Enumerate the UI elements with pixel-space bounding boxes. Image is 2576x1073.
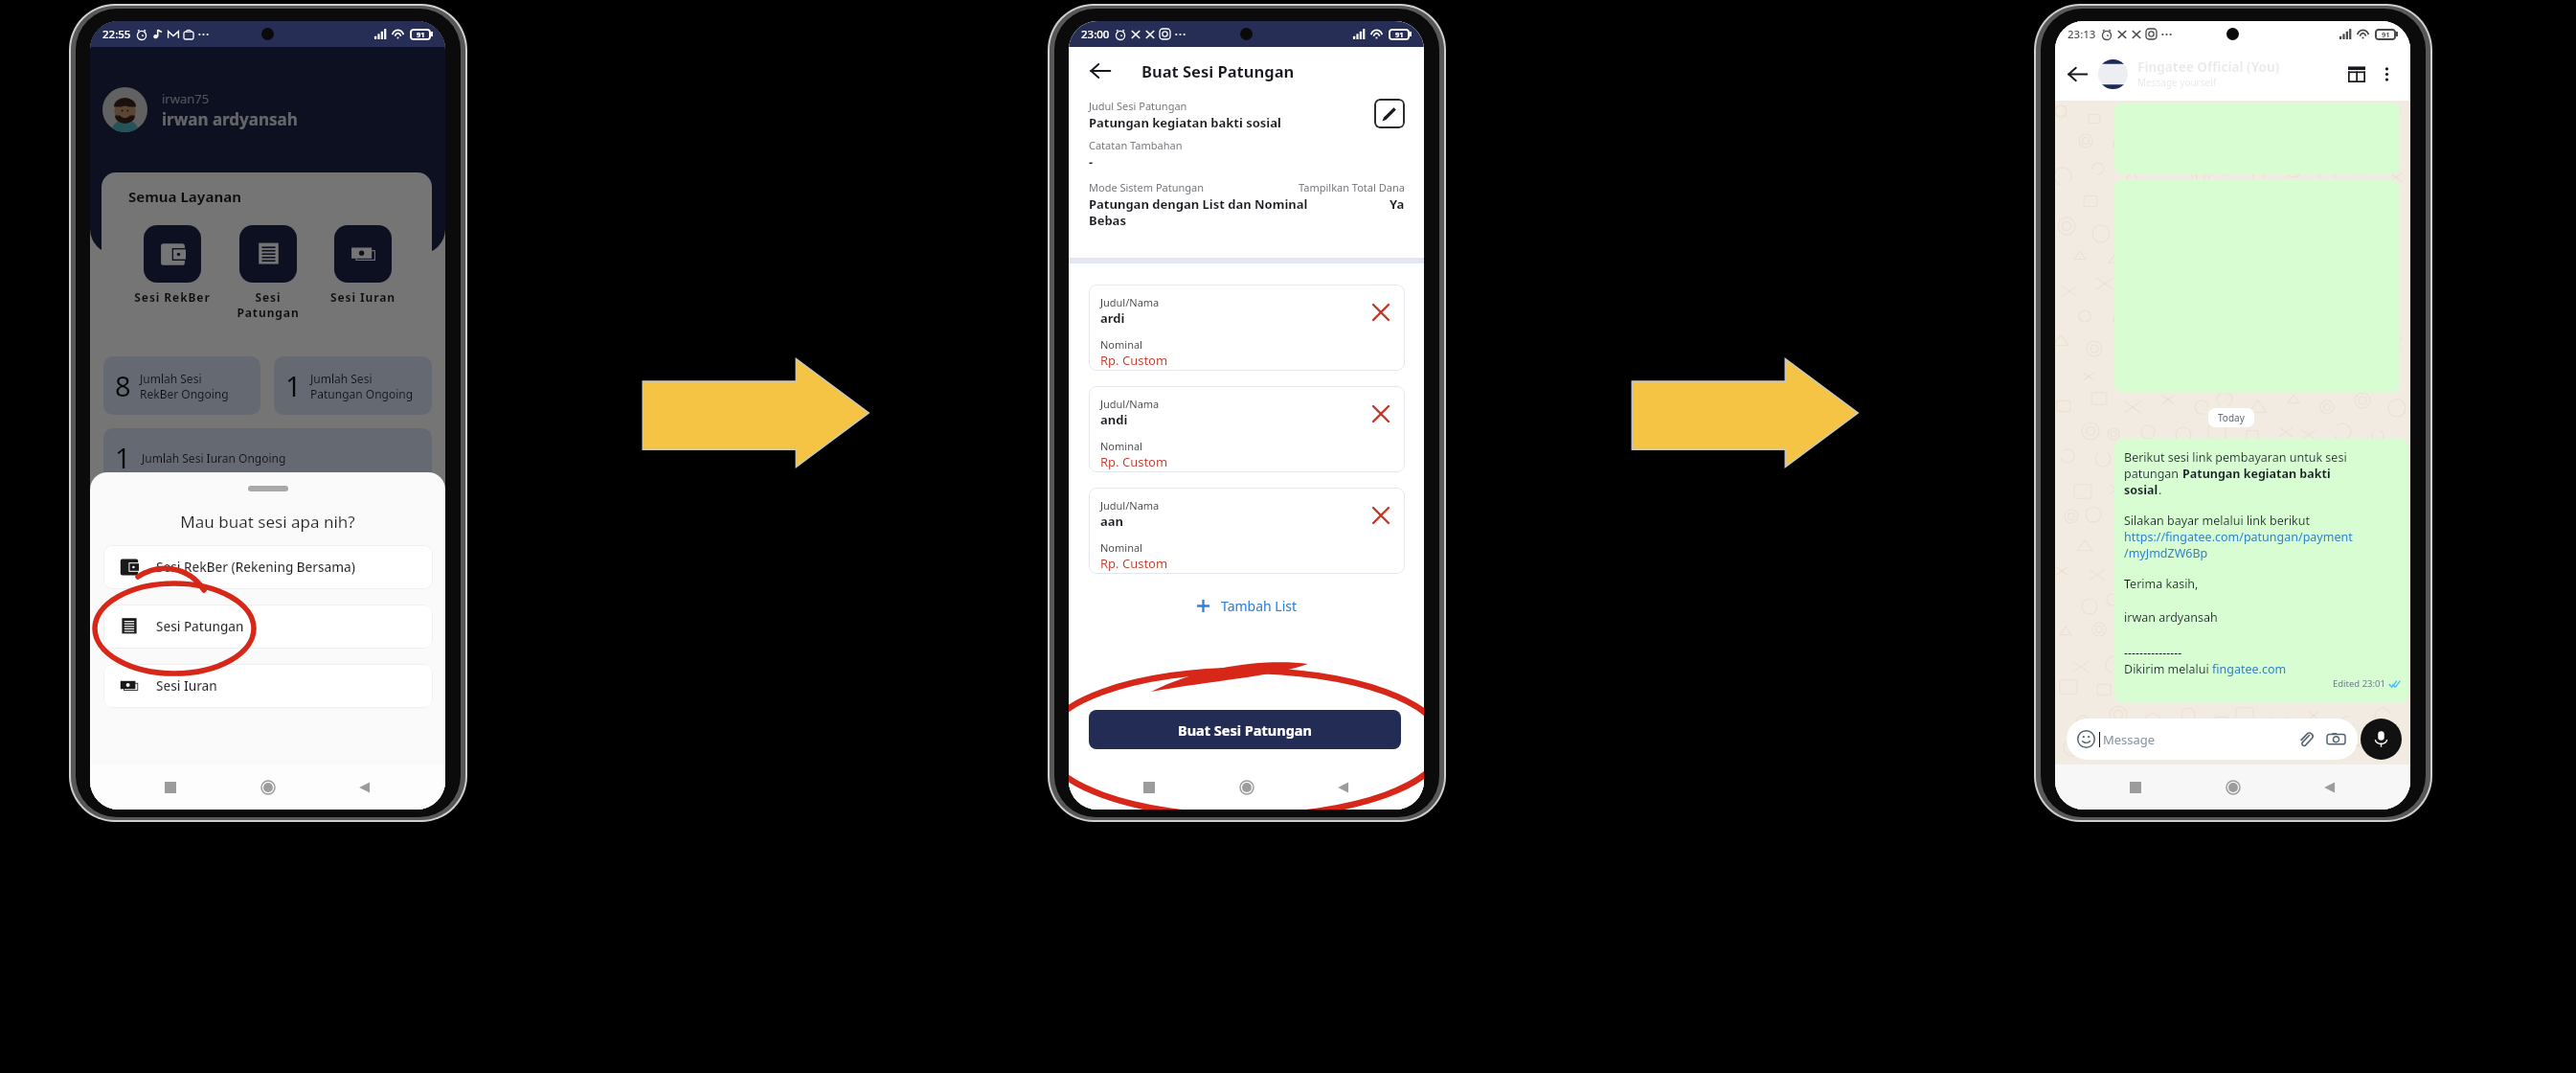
- button[interactable]: Back: [1327, 771, 1360, 804]
- button[interactable]: 8: [103, 356, 260, 415]
- button[interactable]: Home: [1231, 771, 1263, 804]
- button[interactable]: Back: [2314, 771, 2346, 804]
- staticText: patungan: [2124, 466, 2182, 482]
- button[interactable]: Sesi RekBer: [128, 225, 216, 305]
- button[interactable]: Message: [2067, 719, 2358, 760]
- staticText: Catatan Tambahan: [1089, 138, 1183, 152]
- button[interactable]: Judul/Nama: [1089, 386, 1405, 472]
- staticText: Judul/Nama: [1100, 498, 1160, 513]
- staticText: aan: [1100, 513, 1124, 530]
- staticText: Nominal: [1100, 540, 1142, 555]
- staticText: /myJmdZW6Bp: [2124, 545, 2208, 561]
- staticText: Jumlah Sesi Iuran Ongoing: [142, 450, 286, 466]
- staticText: Edited 23:01: [2333, 677, 2385, 690]
- button[interactable]: Business profile: [2344, 61, 2369, 86]
- staticText: Ya: [1390, 195, 1405, 213]
- staticText: Sesi Patungan: [156, 618, 244, 635]
- staticText: Tampilkan Total Dana: [1299, 180, 1405, 194]
- staticText: -: [1089, 153, 1094, 171]
- button[interactable]: 1: [274, 356, 432, 415]
- staticText: Jumlah Sesi Patungan Ongoing: [310, 371, 414, 401]
- staticText: 8: [115, 367, 131, 404]
- button[interactable]: Remove item: [1368, 503, 1393, 528]
- staticText: Rp. Custom: [1100, 555, 1168, 572]
- staticText: irwan ardyansah: [2124, 609, 2218, 626]
- staticText: Sesi Iuran: [156, 677, 217, 695]
- staticText: ---------------: [2124, 645, 2182, 661]
- staticText: 22:55: [102, 27, 131, 42]
- button[interactable]: More options: [2374, 61, 2399, 86]
- button[interactable]: Home: [252, 771, 284, 804]
- staticText: ardi: [1100, 309, 1125, 327]
- staticText: irwan75: [162, 90, 210, 107]
- button[interactable]: Edit: [1374, 99, 1405, 128]
- staticText: 1: [115, 439, 131, 476]
- staticText: Berikut sesi link pembayaran untuk sesi: [2124, 449, 2347, 466]
- staticText: sosial: [2124, 482, 2158, 498]
- button[interactable]: Remove item: [1368, 401, 1393, 426]
- staticText: Mode Sistem Patungan: [1089, 180, 1205, 194]
- staticText: Today: [2218, 411, 2245, 424]
- staticText: Fingatee Official (You): [2137, 58, 2280, 76]
- button[interactable]: Sesi Iuran: [103, 664, 433, 708]
- button[interactable]: Back: [2065, 61, 2090, 86]
- staticText: Buat Sesi Patungan: [1178, 720, 1312, 740]
- staticText: Nominal: [1100, 439, 1142, 453]
- staticText: Patungan dengan List dan Nominal Bebas: [1089, 195, 1322, 229]
- staticText: andi: [1100, 411, 1128, 428]
- button[interactable]: Sesi RekBer (Rekening Bersama): [103, 545, 433, 589]
- staticText: Mau buat sesi apa nih?: [90, 511, 445, 533]
- staticText: Patungan kegiatan bakti: [2182, 466, 2331, 482]
- staticText: Rp. Custom: [1100, 453, 1168, 470]
- button[interactable]: Remove item: [1368, 300, 1393, 325]
- staticText: 91: [1395, 30, 1404, 39]
- staticText: Buat Sesi Patungan: [1141, 60, 1295, 81]
- staticText: 23:13: [2068, 27, 2096, 42]
- button[interactable]: Judul/Nama: [1089, 488, 1405, 574]
- staticText: https://fingatee.com/patungan/payment: [2124, 529, 2353, 545]
- staticText: Sesi Patungan: [224, 289, 312, 321]
- staticText: 1: [285, 367, 302, 404]
- staticText: Judul/Nama: [1100, 397, 1160, 411]
- staticText: Judul/Nama: [1100, 295, 1160, 309]
- button[interactable]: Back: [1087, 57, 1114, 84]
- staticText: .: [2158, 482, 2162, 498]
- staticText: Nominal: [1100, 337, 1142, 352]
- staticText: Judul Sesi Patungan: [1089, 99, 1187, 113]
- staticText: Patungan kegiatan bakti sosial: [1089, 114, 1281, 131]
- button[interactable]: 1: [103, 428, 432, 487]
- staticText: Message yourself: [2137, 76, 2217, 89]
- staticText: 23:00: [1081, 27, 1110, 42]
- staticText: Rp. Custom: [1100, 352, 1168, 369]
- staticText: irwan ardyansah: [162, 108, 298, 130]
- staticText: Sesi RekBer: [128, 289, 216, 305]
- button[interactable]: Buat Sesi Patungan: [1089, 710, 1401, 749]
- staticText: Dikirim melalui: [2124, 661, 2212, 677]
- button[interactable]: Voice message: [2361, 719, 2402, 760]
- staticText: fingatee.com: [2212, 661, 2287, 677]
- staticText: Semua Layanan: [128, 187, 241, 206]
- button[interactable]: Sesi Patungan: [224, 225, 312, 321]
- button[interactable]: Home: [2217, 771, 2249, 804]
- staticText: Sesi Iuran: [319, 289, 407, 305]
- button[interactable]: Recent apps: [1133, 771, 1165, 804]
- staticText: Sesi RekBer (Rekening Bersama): [156, 559, 356, 576]
- button[interactable]: Recent apps: [2119, 771, 2152, 804]
- button[interactable]: Recent apps: [154, 771, 187, 804]
- button[interactable]: Back: [349, 771, 381, 804]
- staticText: Message: [2103, 731, 2156, 748]
- button[interactable]: Judul/Nama: [1089, 285, 1405, 371]
- staticText: Terima kasih,: [2124, 576, 2199, 592]
- staticText: Tambah List: [1221, 597, 1298, 615]
- staticText: 91: [2382, 30, 2390, 39]
- button[interactable]: Sesi Patungan: [103, 605, 433, 649]
- staticText: Jumlah Sesi RekBer Ongoing: [140, 371, 229, 401]
- button[interactable]: Sesi Iuran: [319, 225, 407, 305]
- button[interactable]: Tambah List: [1069, 595, 1424, 617]
- staticText: 91: [417, 30, 425, 39]
- staticText: Silakan bayar melalui link berikut: [2124, 513, 2311, 529]
